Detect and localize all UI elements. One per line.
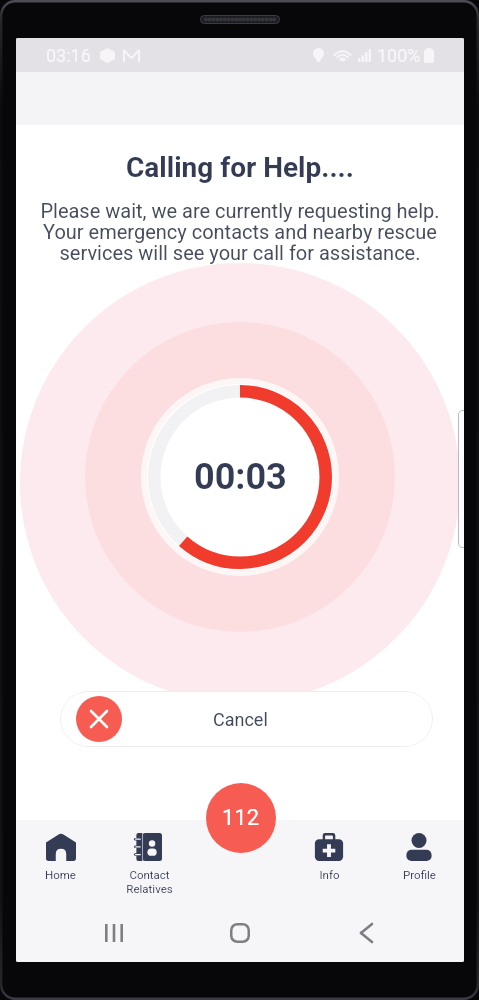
button[interactable]: Home (224, 917, 256, 949)
staticText: 112 (222, 805, 260, 831)
staticText: 00:03 (194, 456, 287, 498)
staticText: Info (319, 868, 340, 881)
staticText: Please wait, we are currently requesting… (40, 199, 440, 265)
staticText: Profile (403, 868, 436, 881)
button[interactable]: Home (16, 820, 105, 881)
staticText: 100% (377, 45, 421, 66)
button[interactable]: Info (284, 820, 374, 881)
button[interactable]: Cancel (60, 691, 433, 747)
button[interactable]: 112 (206, 783, 276, 853)
button[interactable]: Profile (374, 820, 464, 881)
staticText: Contact Relatives (126, 868, 173, 896)
staticText: 03:16 (46, 45, 91, 66)
staticText: Home (45, 868, 76, 881)
button[interactable]: Back (350, 917, 382, 949)
button[interactable]: Recents (98, 917, 130, 949)
button[interactable]: Edge panel handle (458, 410, 464, 548)
staticText: Cancel (213, 709, 268, 730)
staticText: Calling for Help.... (126, 151, 354, 184)
button[interactable]: Contact Relatives (105, 820, 194, 896)
